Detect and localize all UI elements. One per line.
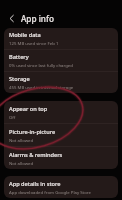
button[interactable]: Battery xyxy=(4,50,118,72)
button[interactable]: Navigate up xyxy=(2,9,21,28)
button[interactable]: Storage xyxy=(4,72,118,93)
button[interactable]: Alarms & reminders xyxy=(4,147,118,169)
staticText: Alarms & reminders xyxy=(9,151,63,159)
staticText: 0% used since last fully charged xyxy=(9,62,73,68)
button[interactable]: Picture-in-picture xyxy=(4,124,118,147)
staticText: Not allowed xyxy=(9,160,34,166)
staticText: Battery xyxy=(9,53,29,61)
staticText: Storage xyxy=(9,75,30,83)
staticText: Off xyxy=(9,114,16,120)
staticText: Picture-in-picture xyxy=(9,128,56,136)
staticText: App details in store xyxy=(9,180,61,188)
staticText: 455 MB used in internal storage xyxy=(9,84,74,90)
button[interactable]: Appear on top xyxy=(4,101,118,124)
staticText: Not allowed xyxy=(9,137,34,143)
staticText: Appear on top xyxy=(9,105,48,113)
staticText: App downloaded from Google Play Store xyxy=(9,189,91,195)
button[interactable]: App details in store xyxy=(4,176,118,198)
button[interactable]: Mobile data xyxy=(4,28,118,50)
staticText: 125 MB used since Feb 1 xyxy=(9,40,59,46)
staticText: App info xyxy=(21,13,54,24)
staticText: Mobile data xyxy=(9,31,41,39)
